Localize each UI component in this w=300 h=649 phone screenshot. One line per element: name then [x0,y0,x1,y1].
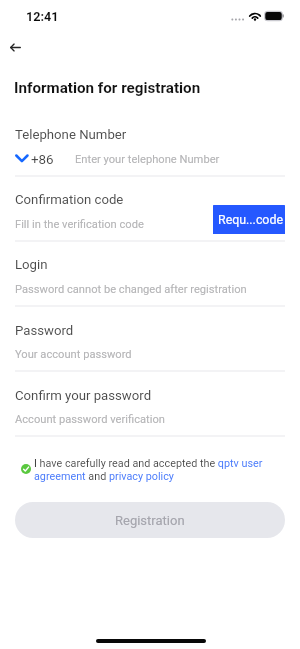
staticText: Your account password [15,348,132,361]
staticText: Confirmation code [15,192,124,207]
button[interactable]: +86 [15,150,52,166]
staticText: Login [15,257,48,272]
staticText: I have carefully read and accepted the q… [34,457,274,483]
staticText: Registration [115,513,185,528]
staticText: Account password verification [15,413,165,426]
staticText: Password cannot be changed after registr… [15,283,247,296]
button[interactable]: Back [2,34,29,61]
staticText: 12:41 [26,9,59,24]
staticText: Information for registration [14,79,201,97]
staticText: +86 [31,152,54,168]
staticText: Enter your telephone Number [75,153,220,166]
button[interactable]: Requ...code [213,205,285,234]
staticText: Requ...code [218,212,283,227]
staticText: Telephone Number [15,127,127,142]
button[interactable]: Agree to terms [19,462,33,476]
staticText: Password [15,323,74,338]
staticText: Confirm your password [15,388,152,403]
staticText: Fill in the verification code [15,218,144,231]
button[interactable]: Registration [15,502,285,538]
